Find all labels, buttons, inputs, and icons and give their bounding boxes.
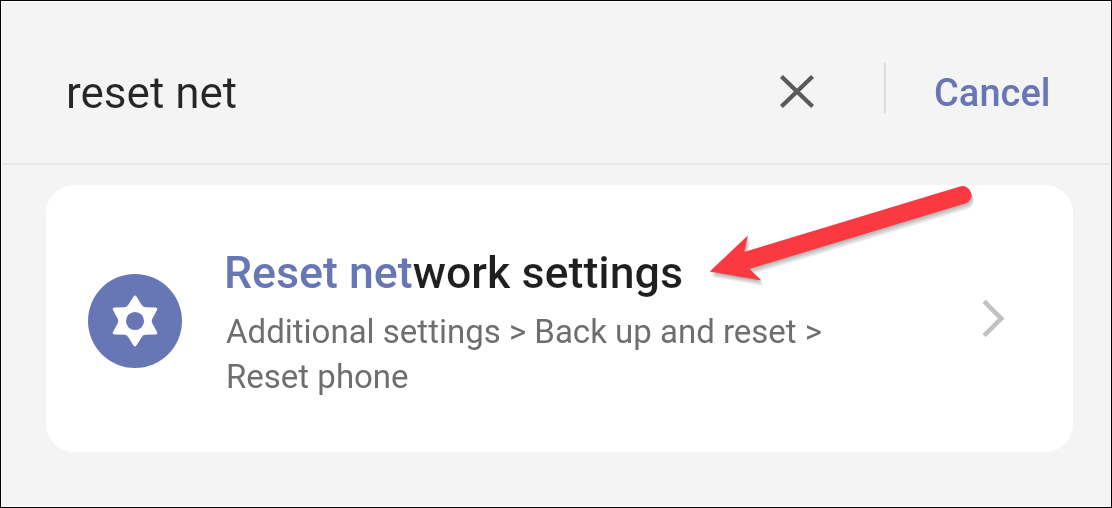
button[interactable]: Cancel xyxy=(918,59,1067,128)
button[interactable]: Reset network settings xyxy=(46,185,1073,452)
other: Open xyxy=(981,299,1007,338)
staticText: Additional settings > Back up and reset … xyxy=(226,312,823,396)
staticText: reset net xyxy=(66,67,238,119)
staticText: Cancel xyxy=(934,71,1051,116)
button[interactable]: Clear search xyxy=(757,52,836,131)
button[interactable]: reset net xyxy=(51,55,253,131)
staticText: Reset network settings xyxy=(224,247,684,299)
